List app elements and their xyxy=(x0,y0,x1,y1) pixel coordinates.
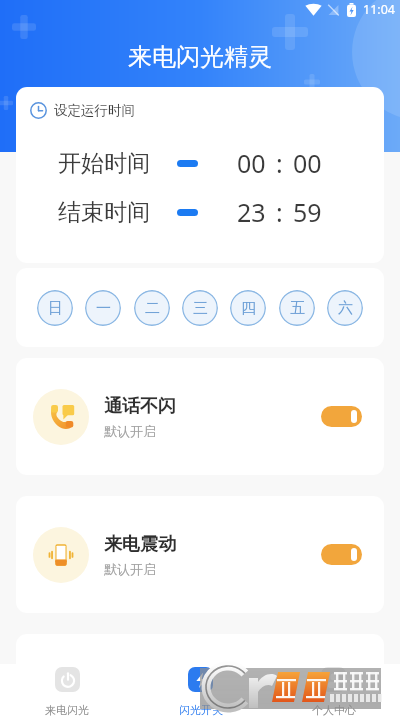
staticText: 二 xyxy=(145,299,160,318)
staticText: 结束时间 xyxy=(58,198,150,227)
button[interactable]: 闪光开关 xyxy=(134,664,267,719)
staticText: 来电闪光 xyxy=(45,703,89,717)
staticText: 11:04 xyxy=(363,1,395,18)
staticText: 个人中心 xyxy=(312,703,356,717)
button[interactable]: 结束时间 xyxy=(16,194,384,230)
button[interactable]: 四 xyxy=(230,290,266,326)
staticText: 一 xyxy=(96,299,111,318)
staticText: 来电震动 xyxy=(104,533,176,556)
staticText: 来电闪光精灵 xyxy=(128,42,272,72)
staticText: 四 xyxy=(241,299,256,318)
staticText: 00 xyxy=(237,146,266,180)
button[interactable]: Toggle 通话不闪 xyxy=(321,406,362,427)
button[interactable]: 六 xyxy=(327,290,363,326)
button[interactable]: 日 xyxy=(37,290,73,326)
staticText: 五 xyxy=(290,299,305,318)
staticText: 日 xyxy=(48,299,63,318)
button[interactable]: 来电闪光 xyxy=(0,664,134,719)
staticText: 六 xyxy=(338,299,353,318)
button[interactable]: 来电震动 xyxy=(16,496,384,613)
staticText: : xyxy=(276,195,283,229)
staticText: : xyxy=(276,146,283,180)
button[interactable]: 二 xyxy=(134,290,170,326)
staticText: 23 xyxy=(237,195,266,229)
staticText: 开始时间 xyxy=(58,149,150,178)
button[interactable]: 开始时间 xyxy=(16,145,384,181)
staticText: 通话不闪 xyxy=(104,395,176,418)
button[interactable]: 通话不闪 xyxy=(16,358,384,475)
staticText: 59 xyxy=(293,195,322,229)
button[interactable]: 五 xyxy=(279,290,315,326)
staticText: 默认开启 xyxy=(104,561,156,577)
button[interactable]: 个人中心 xyxy=(267,664,400,719)
button[interactable]: 三 xyxy=(182,290,218,326)
button[interactable]: Toggle 来电震动 xyxy=(321,544,362,565)
staticText: 00 xyxy=(293,146,322,180)
staticText: 默认开启 xyxy=(104,423,156,439)
staticText: 设定运行时间 xyxy=(54,102,135,119)
staticText: 闪光开关 xyxy=(179,703,223,717)
button[interactable]: 一 xyxy=(85,290,121,326)
staticText: 三 xyxy=(193,299,208,318)
